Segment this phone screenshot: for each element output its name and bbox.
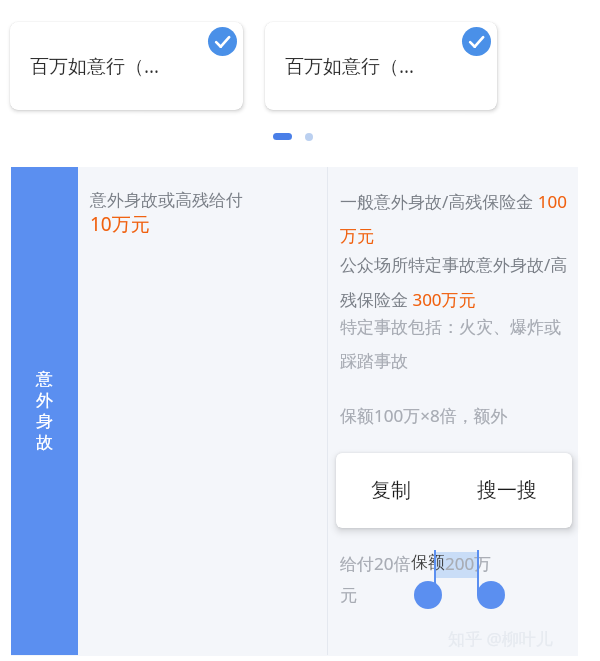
- staticText: 意: [36, 369, 53, 390]
- staticText: 身: [36, 411, 53, 432]
- other: Selection start: [414, 581, 442, 609]
- staticText: 10万元: [90, 211, 150, 237]
- staticText: 外: [36, 390, 53, 411]
- staticText: 百万如意行（…: [285, 53, 415, 79]
- button[interactable]: 意: [11, 167, 78, 655]
- button[interactable]: 意外身故或高残给付: [90, 190, 315, 237]
- staticText: 一般意外身故/高残保险金 100万元: [340, 190, 568, 247]
- staticText: 搜一搜: [477, 478, 537, 503]
- other: Selected: [462, 27, 491, 56]
- other: Selection end: [477, 581, 505, 609]
- staticText: 元: [340, 585, 357, 606]
- staticText: 特定事故包括：火灾、爆炸或踩踏事故: [340, 317, 568, 372]
- staticText: 知乎 @柳叶儿: [448, 627, 553, 650]
- staticText: 保额100万×8倍，额外: [340, 404, 508, 427]
- staticText: 复制: [371, 478, 411, 503]
- staticText: 公众场所特定事故意外身故/高残保险金 300万元: [340, 253, 568, 311]
- button[interactable]: 百万如意行（…: [10, 22, 243, 110]
- button[interactable]: 百万如意行（…: [265, 22, 497, 110]
- staticText: 意外身故或高残给付: [90, 190, 243, 211]
- staticText: 给付20倍: [340, 552, 411, 575]
- button[interactable]: 复制: [353, 468, 429, 513]
- staticText: 200万: [445, 552, 492, 575]
- staticText: 故: [36, 432, 53, 453]
- other: Selected: [208, 27, 237, 56]
- button[interactable]: 搜一搜: [459, 468, 555, 513]
- button[interactable]: 一般意外身故/高残保险金 100万元: [340, 190, 568, 427]
- staticText: 百万如意行（…: [30, 53, 160, 79]
- staticText: 保额: [411, 552, 445, 573]
